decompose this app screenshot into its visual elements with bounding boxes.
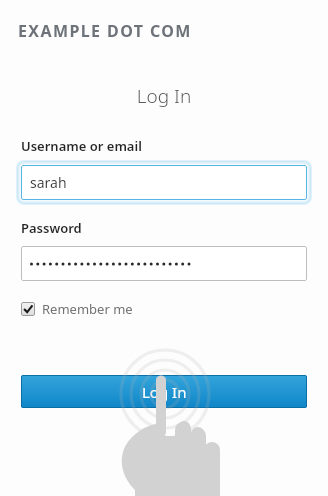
- staticText: EXAMPLE DOT COM: [18, 20, 192, 42]
- staticText: Remember me: [42, 300, 133, 318]
- button[interactable]: Log In: [21, 375, 307, 408]
- staticText: Password: [21, 219, 82, 237]
- button[interactable]: sarah: [21, 165, 307, 200]
- staticText: sarah: [30, 173, 67, 192]
- staticText: Log In: [0, 83, 328, 109]
- staticText: Log In: [142, 382, 187, 402]
- staticText: Username or email: [21, 137, 142, 155]
- button[interactable]: Remember me: [21, 300, 133, 318]
- button[interactable]: Password: [21, 246, 307, 281]
